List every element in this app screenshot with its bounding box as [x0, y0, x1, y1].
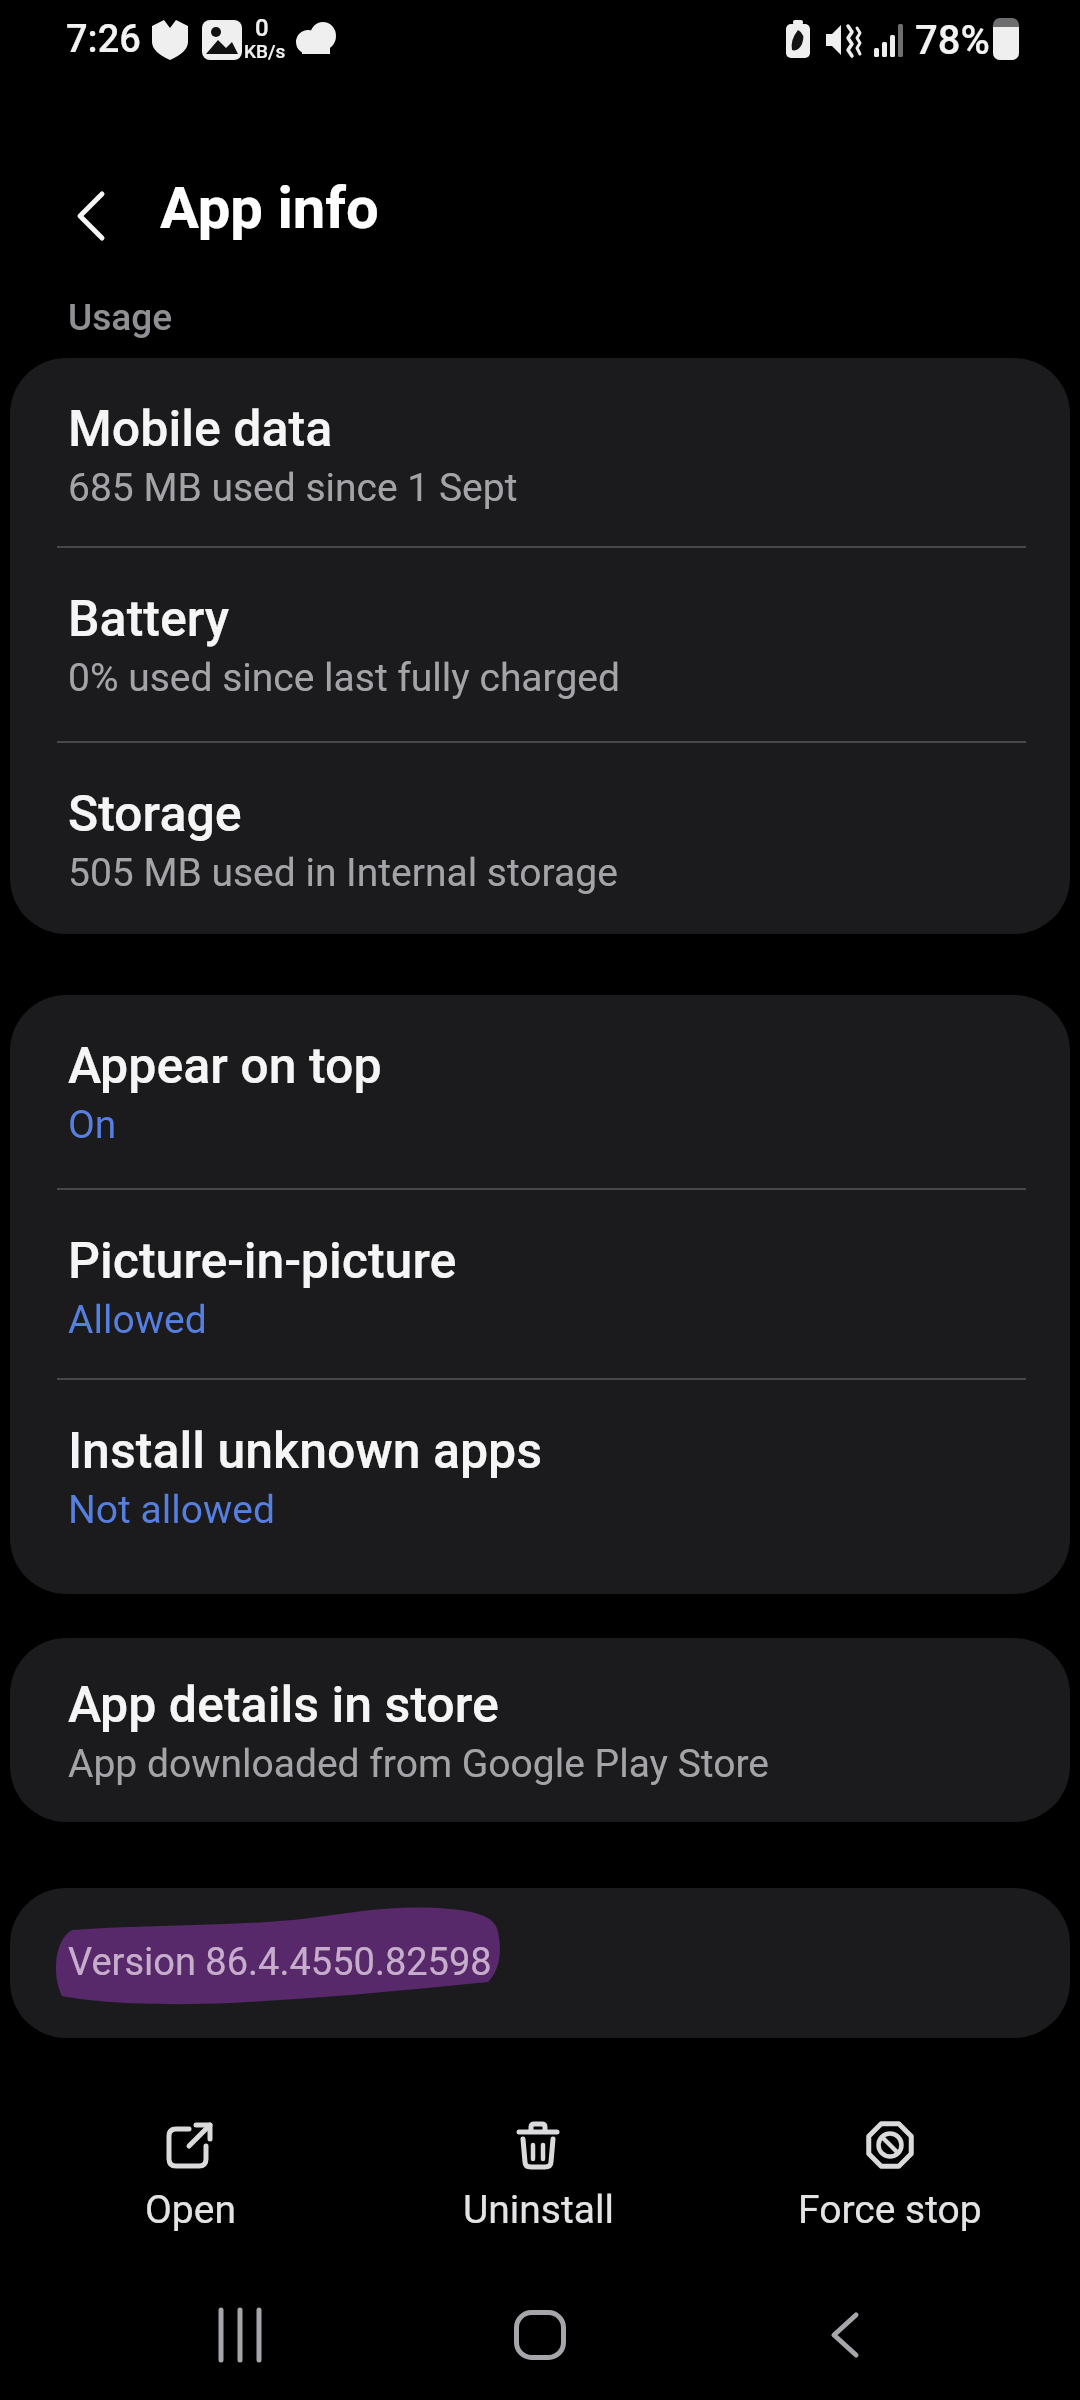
staticText: Usage: [68, 296, 173, 339]
staticText: 78%: [915, 17, 990, 64]
button[interactable]: App details in store: [10, 1638, 1070, 1822]
button[interactable]: [170, 2285, 310, 2385]
staticText: Uninstall: [463, 2187, 614, 2233]
staticText: 0: [255, 14, 269, 42]
staticText: Open: [145, 2187, 236, 2233]
button[interactable]: Uninstall: [408, 2119, 668, 2233]
button[interactable]: Appear on top: [10, 995, 1070, 1188]
button[interactable]: Force stop: [760, 2119, 1020, 2233]
staticText: 7:26: [66, 17, 141, 62]
staticText: Picture-in-picture: [68, 1232, 457, 1291]
staticText: 505 MB used in Internal storage: [68, 850, 618, 896]
button[interactable]: Storage: [10, 743, 1070, 934]
button[interactable]: [470, 2285, 610, 2385]
staticText: 0% used since last fully charged: [68, 655, 620, 701]
staticText: KB/s: [244, 40, 286, 62]
staticText: Allowed: [68, 1297, 207, 1343]
staticText: Mobile data: [68, 400, 333, 459]
staticText: Storage: [68, 785, 242, 844]
staticText: App details in store: [68, 1676, 499, 1735]
staticText: Battery: [68, 590, 230, 649]
staticText: Appear on top: [68, 1037, 382, 1096]
staticText: App info: [160, 174, 379, 242]
staticText: Version 86.4.4550.82598: [68, 1940, 492, 1985]
button[interactable]: Picture-in-picture: [10, 1190, 1070, 1378]
button[interactable]: Battery: [10, 548, 1070, 741]
button[interactable]: [775, 2285, 915, 2385]
button[interactable]: Open: [60, 2119, 320, 2233]
staticText: App downloaded from Google Play Store: [68, 1741, 770, 1787]
staticText: Force stop: [798, 2187, 982, 2233]
staticText: Install unknown apps: [68, 1422, 543, 1481]
button[interactable]: Install unknown apps: [10, 1380, 1070, 1594]
button[interactable]: [56, 174, 128, 246]
staticText: 685 MB used since 1 Sept: [68, 465, 518, 511]
staticText: On: [68, 1102, 117, 1148]
button[interactable]: Mobile data: [10, 358, 1070, 546]
button[interactable]: Version 86.4.4550.82598: [10, 1888, 1070, 2038]
staticText: Not allowed: [68, 1487, 275, 1533]
